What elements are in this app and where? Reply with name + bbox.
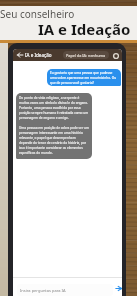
button[interactable]: Voltar bbox=[15, 50, 25, 60]
button[interactable]: Enviar bbox=[113, 283, 122, 293]
button[interactable]: Insira perguntas para IA bbox=[17, 284, 113, 296]
button[interactable]: Papel da IA: nenhuma bbox=[63, 51, 109, 59]
staticText: IA e Ideação bbox=[38, 19, 131, 39]
staticText: Papel da IA: nenhuma bbox=[66, 53, 106, 58]
button[interactable]: Eu gostaria que uma pessoa que pudesse u… bbox=[47, 69, 121, 86]
staticText: IA e Ideação bbox=[25, 52, 52, 58]
button[interactable]: Do ponto de vista religioso, a serpente … bbox=[16, 93, 92, 159]
staticText: Insira perguntas para IA bbox=[20, 288, 66, 293]
button[interactable]: Configurações bbox=[111, 51, 120, 60]
staticText: Eu gostaria que uma pessoa que pudesse u… bbox=[50, 71, 118, 84]
staticText: Seu conselheiro bbox=[0, 7, 75, 21]
staticText: Do ponto de vista religioso, a serpente … bbox=[19, 96, 89, 155]
